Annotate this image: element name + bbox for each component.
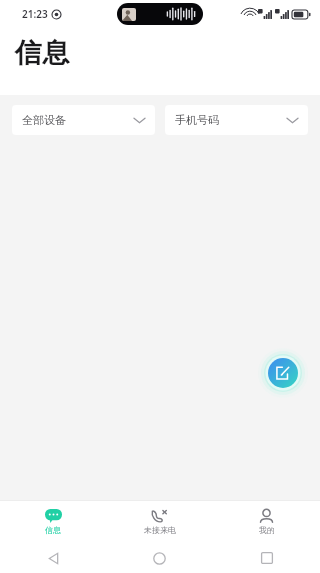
button[interactable]: 我的	[213, 501, 320, 543]
staticText: 手机号码	[175, 113, 219, 127]
button[interactable]: 手机号码	[165, 105, 308, 135]
staticText: 21:23	[22, 7, 48, 21]
button[interactable]: Back	[0, 543, 106, 573]
staticText: 我的	[259, 525, 275, 535]
button[interactable]: 全部设备	[12, 105, 155, 135]
staticText: 未接来电	[144, 525, 176, 535]
button[interactable]: 信息	[0, 501, 106, 543]
staticText: 信息	[14, 36, 70, 70]
button[interactable]: Home	[106, 543, 213, 573]
button[interactable]: New message	[258, 348, 308, 398]
staticText: 信息	[45, 525, 61, 535]
staticText: 全部设备	[22, 113, 66, 127]
button[interactable]: 未接来电	[106, 501, 213, 543]
button[interactable]: Recent apps	[213, 543, 320, 573]
